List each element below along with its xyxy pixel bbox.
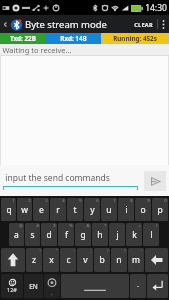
staticText: x	[49, 254, 54, 266]
staticText: !	[39, 248, 41, 254]
staticText: 7	[113, 198, 116, 204]
staticText: e	[39, 204, 44, 216]
staticText: Txd: 22B	[10, 34, 36, 43]
staticText: #	[36, 223, 39, 229]
button[interactable]: "	[43, 248, 59, 272]
button[interactable]: 8	[118, 198, 134, 221]
staticText: .	[137, 280, 139, 290]
button[interactable]: 4	[50, 198, 66, 221]
button[interactable]: !	[26, 248, 42, 272]
button[interactable]: #	[25, 223, 40, 246]
button[interactable]: +	[126, 223, 142, 246]
button[interactable]: CLEAR	[130, 15, 157, 33]
staticText: 12#	[7, 286, 17, 293]
button[interactable]: $	[41, 223, 57, 246]
staticText: /	[107, 248, 109, 254]
staticText: 2	[28, 198, 31, 204]
button[interactable]: &	[75, 223, 91, 246]
button[interactable]: ~	[128, 248, 144, 272]
staticText: Running: 452s	[113, 34, 157, 43]
staticText: 0	[164, 198, 167, 204]
button[interactable]: Txd: 22B	[0, 33, 46, 44]
button[interactable]: Symbols and emoji	[1, 274, 23, 298]
button[interactable]: /	[94, 248, 110, 272]
staticText: g	[80, 229, 86, 241]
button[interactable]: Settings	[44, 274, 60, 298]
staticText: -	[122, 223, 124, 229]
button[interactable]: ;	[77, 248, 93, 272]
button[interactable]: :	[60, 248, 76, 272]
staticText: o	[140, 204, 146, 216]
button[interactable]: 9	[135, 198, 151, 221]
staticText: q	[6, 204, 12, 216]
button[interactable]: 5	[67, 198, 83, 221]
staticText: EN	[29, 282, 38, 291]
button[interactable]: *	[92, 223, 108, 246]
staticText: +	[138, 223, 141, 229]
staticText: z	[32, 254, 36, 266]
staticText: k	[132, 229, 137, 241]
staticText: ;	[90, 248, 92, 254]
button[interactable]: Backspace	[145, 248, 168, 272]
staticText: input the send commands	[5, 172, 110, 184]
button[interactable]: 3	[33, 198, 49, 221]
staticText: (	[156, 223, 158, 229]
button[interactable]: Running: 452s	[101, 33, 169, 44]
button[interactable]: Shift	[1, 248, 25, 272]
button[interactable]: 6	[84, 198, 100, 221]
staticText: 3	[45, 198, 48, 204]
staticText: j	[116, 229, 119, 241]
button[interactable]: Back	[0, 15, 107, 33]
staticText: y	[90, 204, 95, 216]
staticText: 5	[79, 198, 82, 204]
button[interactable]: 7	[101, 198, 117, 221]
button[interactable]: Send	[144, 171, 166, 191]
button[interactable]: More options	[158, 15, 169, 33]
staticText: &	[86, 223, 90, 229]
button[interactable]: -	[109, 223, 125, 246]
button[interactable]: ?	[111, 248, 127, 272]
staticText: ,	[51, 290, 53, 297]
staticText: 9	[147, 198, 150, 204]
button[interactable]: @	[9, 223, 24, 246]
button[interactable]: .	[130, 274, 146, 298]
staticText: b	[99, 254, 105, 266]
staticText: v	[83, 254, 88, 266]
staticText: f	[65, 229, 68, 241]
staticText: c	[66, 254, 71, 266]
staticText: h	[97, 229, 103, 241]
button[interactable]: input the send commands	[3, 172, 142, 190]
button[interactable]: Space	[61, 274, 129, 298]
button[interactable]: %	[58, 223, 74, 246]
staticText: r	[56, 204, 60, 216]
staticText: @	[19, 223, 23, 229]
button[interactable]: (	[143, 223, 159, 246]
staticText: CLEAR	[134, 21, 153, 28]
button[interactable]: 1	[1, 198, 16, 221]
staticText: Waiting to receive...	[2, 45, 72, 55]
staticText: "	[56, 248, 58, 254]
staticText: ?	[124, 248, 126, 254]
staticText: 8	[130, 198, 133, 204]
button[interactable]: 0	[152, 198, 168, 221]
staticText: n	[116, 254, 122, 266]
button[interactable]: 2	[17, 198, 32, 221]
staticText: 14:30	[145, 2, 167, 14]
button[interactable]: EN	[24, 274, 43, 298]
staticText: m	[132, 254, 140, 266]
staticText: *	[104, 223, 107, 229]
staticText: i	[125, 204, 128, 216]
staticText: s	[30, 229, 35, 241]
button[interactable]: Rxd: 14B	[46, 33, 101, 44]
staticText: Byte stream mode	[25, 18, 107, 31]
button[interactable]: Enter	[147, 274, 168, 298]
staticText: w	[21, 204, 28, 216]
staticText: 4	[62, 198, 65, 204]
staticText: t	[73, 204, 77, 216]
staticText: ~	[140, 248, 143, 254]
staticText: a	[14, 229, 19, 241]
staticText: 1	[12, 198, 15, 204]
staticText: 6	[96, 198, 99, 204]
staticText: u	[106, 204, 112, 216]
staticText: d	[46, 229, 52, 241]
